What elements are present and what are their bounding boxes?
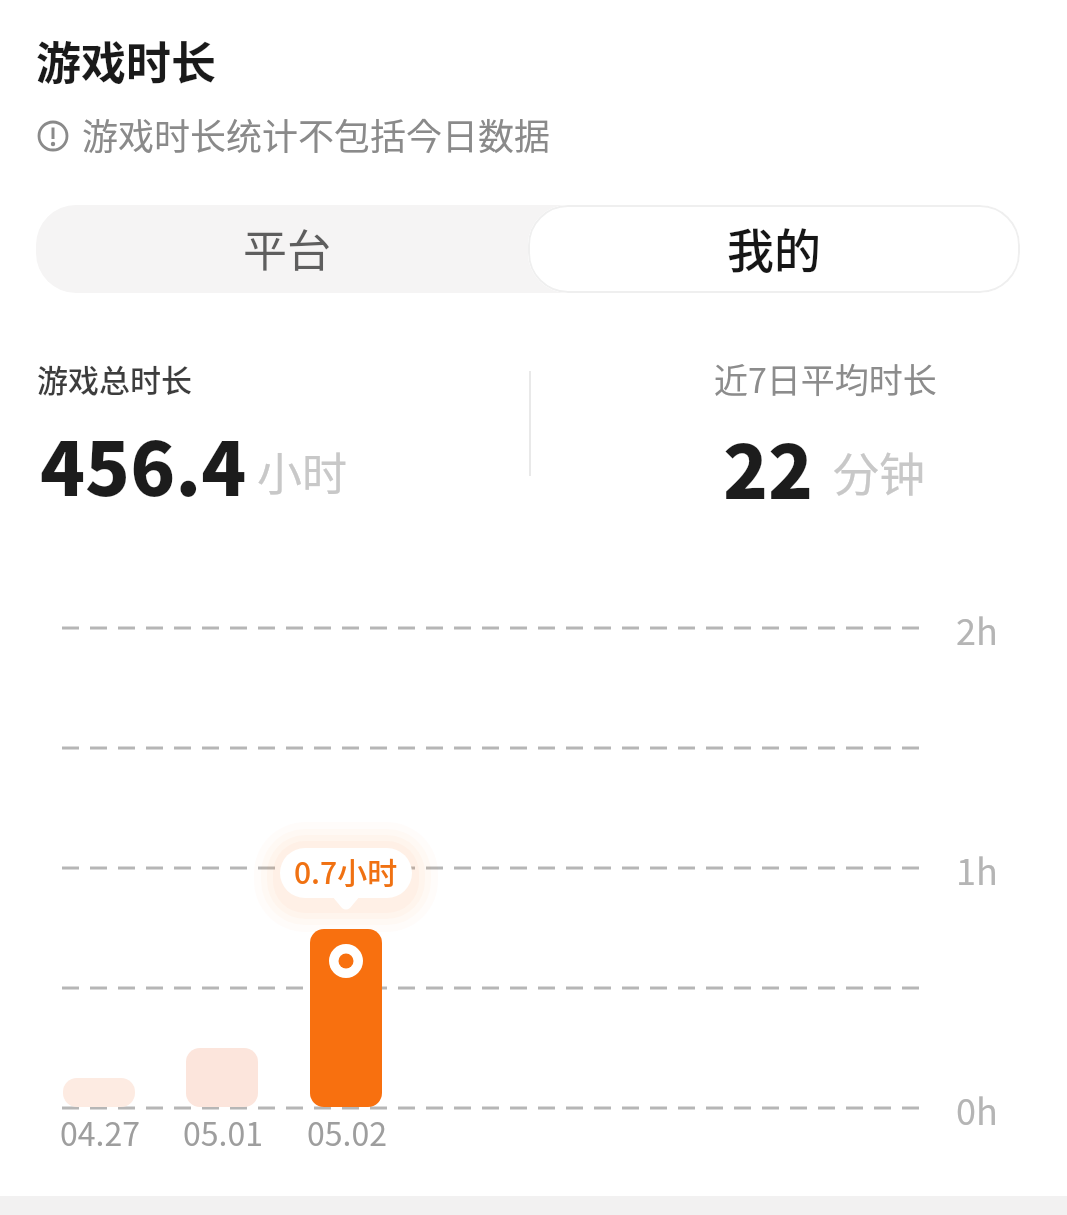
staticText: 22	[723, 413, 814, 520]
staticText: 05.01	[183, 1109, 263, 1155]
button[interactable]: 平台	[36, 205, 528, 293]
staticText: 游戏时长统计不包括今日数据	[82, 108, 551, 160]
staticText: 0.7小时	[294, 849, 398, 892]
staticText: 平台	[243, 216, 331, 280]
staticText: 2h	[956, 603, 998, 655]
staticText: 游戏总时长	[37, 356, 192, 401]
staticText: 近7日平均时长	[714, 354, 937, 403]
staticText: 游戏时长	[36, 28, 217, 93]
staticText: 04.27	[60, 1109, 140, 1155]
staticText: 小时	[257, 439, 348, 504]
staticText: 0h	[956, 1083, 998, 1135]
staticText: 分钟	[833, 438, 925, 505]
staticText: 05.02	[307, 1109, 387, 1155]
button[interactable]: 我的	[528, 205, 1020, 293]
staticText: 1h	[956, 843, 998, 895]
staticText: 我的	[727, 213, 821, 281]
staticText: 456.4	[40, 410, 247, 517]
button[interactable]	[36, 114, 72, 150]
